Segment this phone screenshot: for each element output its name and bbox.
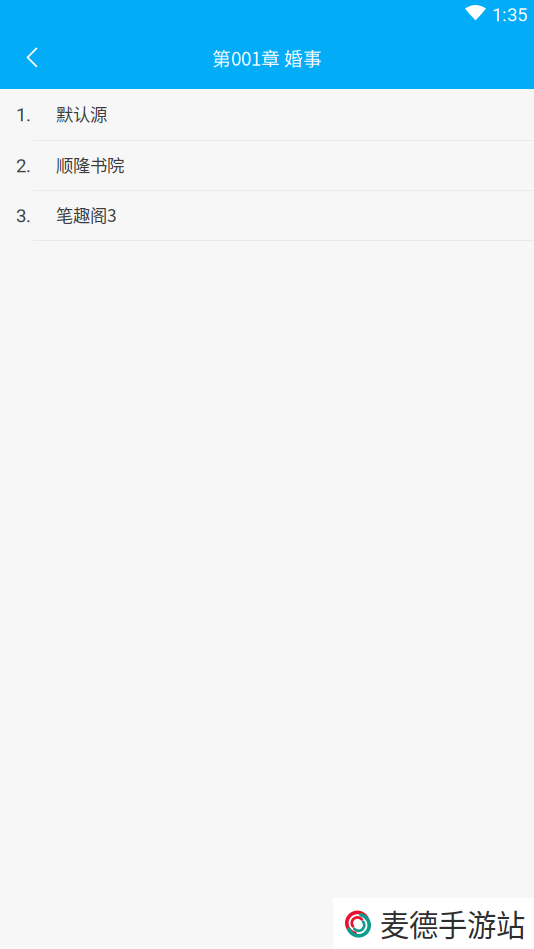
staticText: 3. (16, 205, 31, 227)
staticText: 顺隆书院 (56, 152, 124, 177)
staticText: 1. (16, 104, 31, 126)
staticText: 麦德手游站 (380, 902, 525, 944)
staticText: 2. (16, 155, 31, 177)
button[interactable]: 3. (0, 191, 534, 241)
staticText: 第001章 婚事 (212, 44, 322, 71)
staticText: 默认源 (56, 101, 107, 126)
button[interactable]: 2. (0, 141, 534, 191)
staticText: 1:35 (492, 4, 527, 26)
button[interactable]: 1. (0, 89, 534, 141)
button[interactable]: Back (0, 29, 64, 85)
staticText: 笔趣阁3 (56, 202, 117, 227)
